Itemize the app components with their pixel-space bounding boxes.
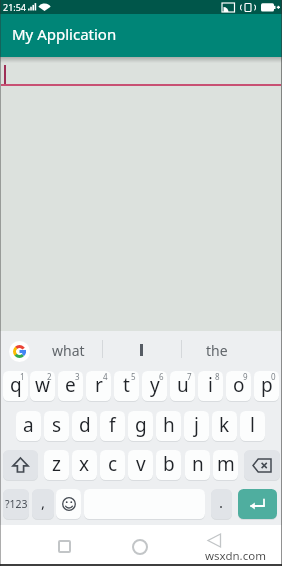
staticText: z [52,451,61,477]
button[interactable]: x [72,450,97,480]
button[interactable]: o [226,371,251,401]
button[interactable]: g [128,411,153,441]
button[interactable] [9,341,30,362]
button[interactable]: p [254,371,279,401]
button[interactable] [206,533,228,551]
button[interactable]: ?123 [3,489,29,519]
button[interactable]: f [100,411,125,441]
button[interactable] [56,489,81,519]
staticText: 7 [187,371,192,382]
staticText: 1 [20,371,25,382]
button[interactable] [58,540,71,553]
staticText: j [194,412,199,438]
button[interactable]: e [58,371,83,401]
staticText: m [217,451,235,477]
staticText: v [136,451,146,477]
button[interactable]: what [36,337,101,363]
staticText: . [219,492,224,512]
staticText: , [41,492,46,512]
button[interactable]: u [170,371,195,401]
staticText: w [35,372,50,398]
button[interactable]: m [213,450,238,480]
button[interactable]: y [142,371,167,401]
staticText: l [250,412,255,438]
staticText: d [79,412,91,438]
staticText: u [177,372,189,398]
staticText: the [206,341,228,360]
staticText: o [233,372,245,398]
staticText: x [79,451,90,477]
button[interactable] [103,337,179,363]
button[interactable]: b [156,450,181,480]
staticText: what [52,341,85,360]
button[interactable]: c [100,450,125,480]
staticText: g [135,412,147,438]
staticText: My Application [12,24,117,44]
staticText: 8 [215,371,220,382]
staticText: r [95,372,103,398]
staticText: 6 [159,371,164,382]
staticText: f [109,412,116,438]
staticText: 2 [47,371,52,382]
staticText: ?123 [5,497,28,511]
staticText: y [150,372,160,398]
button[interactable]: l [240,411,265,441]
button[interactable]: n [185,450,210,480]
button[interactable]: w [30,371,55,401]
staticText: k [219,412,230,438]
button[interactable]: k [212,411,237,441]
button[interactable] [132,539,148,555]
staticText: b [163,451,175,477]
staticText: 5 [131,371,136,382]
staticText: p [261,372,273,398]
staticText: 4 [103,371,108,382]
button[interactable]: d [72,411,97,441]
staticText: s [52,412,62,438]
staticText: h [163,412,175,438]
staticText: wsxdn.com [205,548,266,564]
staticText: a [23,412,34,438]
staticText: 21:54 [3,1,27,13]
button[interactable]: . [211,489,232,519]
button[interactable]: v [128,450,153,480]
button[interactable]: a [16,411,41,441]
staticText: c [108,451,118,477]
staticText: n [192,451,204,477]
button[interactable]: , [32,489,54,519]
button[interactable]: r [86,371,111,401]
button[interactable]: z [44,450,69,480]
staticText: t [123,372,130,398]
staticText: 3 [75,371,80,382]
button[interactable]: q [3,371,28,401]
button[interactable]: the [182,337,252,363]
staticText: 0 [271,371,276,382]
staticText: 9 [243,371,248,382]
button[interactable]: s [44,411,69,441]
staticText: e [65,372,76,398]
button[interactable]: i [198,371,223,401]
button[interactable] [244,450,280,480]
staticText: i [208,372,213,398]
button[interactable] [3,450,38,480]
button[interactable] [238,489,277,519]
button[interactable]: t [114,371,139,401]
staticText: q [10,372,22,398]
button[interactable]: h [156,411,181,441]
button[interactable]: j [184,411,209,441]
